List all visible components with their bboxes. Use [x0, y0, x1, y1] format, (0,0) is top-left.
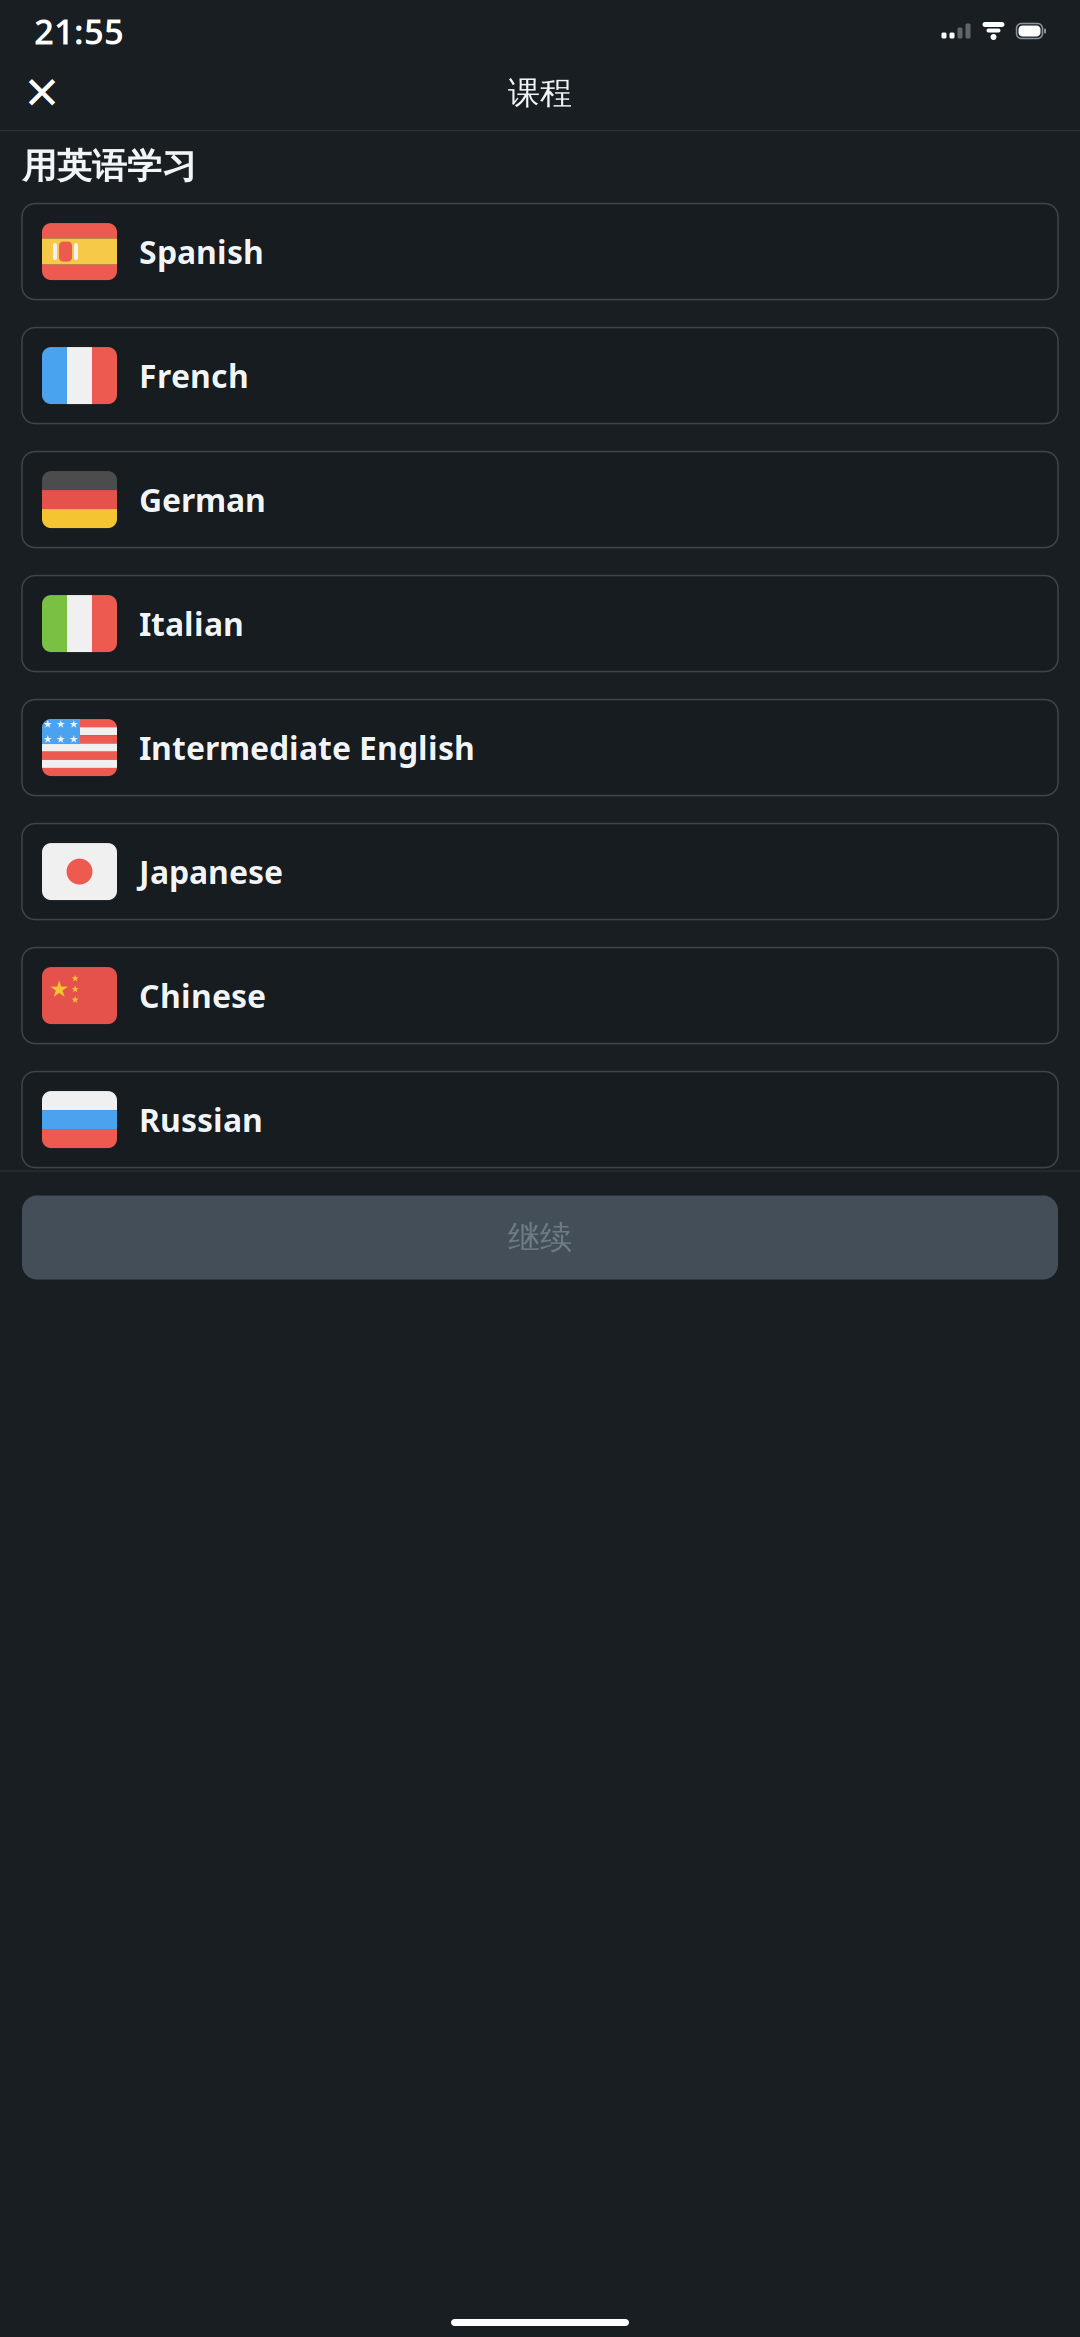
button[interactable]: Russian	[22, 1072, 1058, 1168]
staticText: 21:55	[34, 8, 124, 54]
staticText: Chinese	[139, 974, 266, 1017]
staticText: Spanish	[139, 230, 264, 273]
button[interactable]: German	[22, 452, 1058, 548]
button[interactable]: ★	[22, 948, 1058, 1044]
button[interactable]: Japanese	[22, 824, 1058, 920]
staticText: ✕	[23, 67, 61, 119]
staticText: ★	[71, 994, 79, 1005]
staticText: Intermediate English	[139, 726, 475, 769]
button[interactable]: Spanish	[22, 204, 1058, 300]
button[interactable]: French	[22, 328, 1058, 424]
staticText: ★	[71, 973, 79, 984]
button[interactable]: ★	[22, 700, 1058, 796]
button[interactable]: Italian	[22, 576, 1058, 672]
staticText: ★	[56, 718, 66, 730]
staticText: ★	[56, 733, 66, 745]
staticText: German	[139, 478, 266, 521]
staticText: 用英语学习	[22, 145, 197, 188]
staticText: ★	[49, 976, 69, 1002]
staticText: Japanese	[139, 850, 283, 893]
staticText: ★	[69, 733, 79, 745]
staticText: Italian	[139, 602, 244, 645]
staticText: ★	[43, 718, 53, 730]
staticText: 课程	[508, 73, 572, 113]
staticText: ★	[71, 984, 79, 994]
staticText: 继续	[508, 1218, 572, 1257]
staticText: ★	[43, 733, 53, 745]
button[interactable]: 继续	[22, 1195, 1058, 1279]
staticText: ★	[69, 718, 79, 730]
button[interactable]: Close	[18, 69, 66, 117]
staticText: Russian	[139, 1098, 263, 1141]
button[interactable]: Korean	[22, 1196, 1058, 1292]
staticText: French	[139, 354, 249, 397]
